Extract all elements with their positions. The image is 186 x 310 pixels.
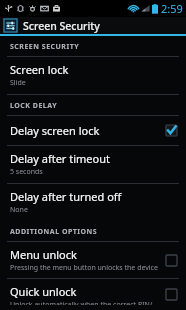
staticText: Screen lock (10, 62, 69, 77)
staticText: Menu unlock (10, 247, 77, 262)
other: Quick unlock (164, 287, 179, 302)
staticText: Unlock automatically when the correct PI… (10, 300, 158, 305)
other: App icon (4, 19, 17, 32)
other: Menu unlock (164, 253, 179, 268)
staticText: LOCK DELAY (10, 101, 58, 111)
staticText: None (10, 205, 28, 215)
button[interactable]: Delay screen lock (0, 116, 186, 146)
button[interactable]: Delay after timeout (0, 146, 186, 184)
button[interactable]: Quick unlock (0, 279, 186, 310)
staticText: Delay screen lock (10, 123, 100, 138)
button[interactable]: App icon (0, 17, 186, 34)
button[interactable]: Delay after turned off (0, 184, 186, 221)
staticText: Screen Security (23, 19, 100, 33)
staticText: 2:59 (161, 1, 183, 16)
button[interactable]: Screen lock (0, 57, 186, 95)
staticText: Delay after timeout (10, 151, 110, 166)
other: Delay screen lock (164, 123, 179, 138)
staticText: 5 seconds (10, 167, 43, 177)
button[interactable]: Menu unlock (0, 242, 186, 279)
staticText: ADDITIONAL OPTIONS (10, 227, 98, 237)
staticText: Delay after turned off (10, 189, 122, 204)
staticText: Quick unlock (10, 284, 77, 299)
staticText: Pressing the menu button unlocks the dev… (10, 263, 158, 273)
staticText: Slide (10, 78, 26, 88)
staticText: SCREEN SECURITY (10, 42, 80, 52)
